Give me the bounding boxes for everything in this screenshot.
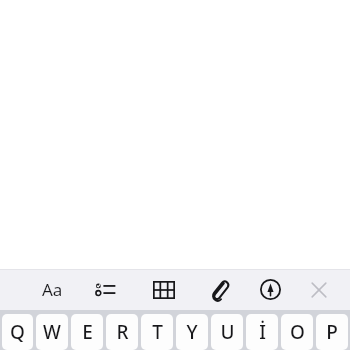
staticText: P — [326, 319, 338, 345]
staticText: O — [290, 319, 305, 345]
staticText: Q — [10, 319, 25, 345]
staticText: İ — [259, 319, 266, 345]
button[interactable]: W — [36, 314, 68, 350]
button[interactable]: Attach file — [197, 269, 241, 310]
button[interactable]: Text format — [30, 269, 74, 310]
button[interactable]: R — [106, 314, 138, 350]
staticText: T — [152, 319, 163, 345]
button[interactable]: İ — [246, 314, 278, 350]
staticText: R — [116, 319, 129, 345]
button[interactable]: Close keyboard — [297, 269, 341, 310]
staticText: W — [43, 319, 61, 345]
button[interactable]: Checklist — [83, 269, 127, 310]
button[interactable]: O — [281, 314, 313, 350]
button[interactable]: U — [211, 314, 243, 350]
staticText: U — [220, 319, 235, 345]
button[interactable]: Table — [142, 269, 186, 310]
button[interactable]: Q — [2, 314, 33, 350]
staticText: Aa — [42, 278, 63, 301]
button[interactable]: P — [316, 314, 348, 350]
button[interactable]: T — [141, 314, 173, 350]
staticText: Y — [186, 319, 198, 345]
button[interactable]: Markup — [248, 269, 292, 310]
staticText: E — [82, 319, 93, 345]
button[interactable]: Y — [176, 314, 208, 350]
button[interactable]: E — [71, 314, 103, 350]
